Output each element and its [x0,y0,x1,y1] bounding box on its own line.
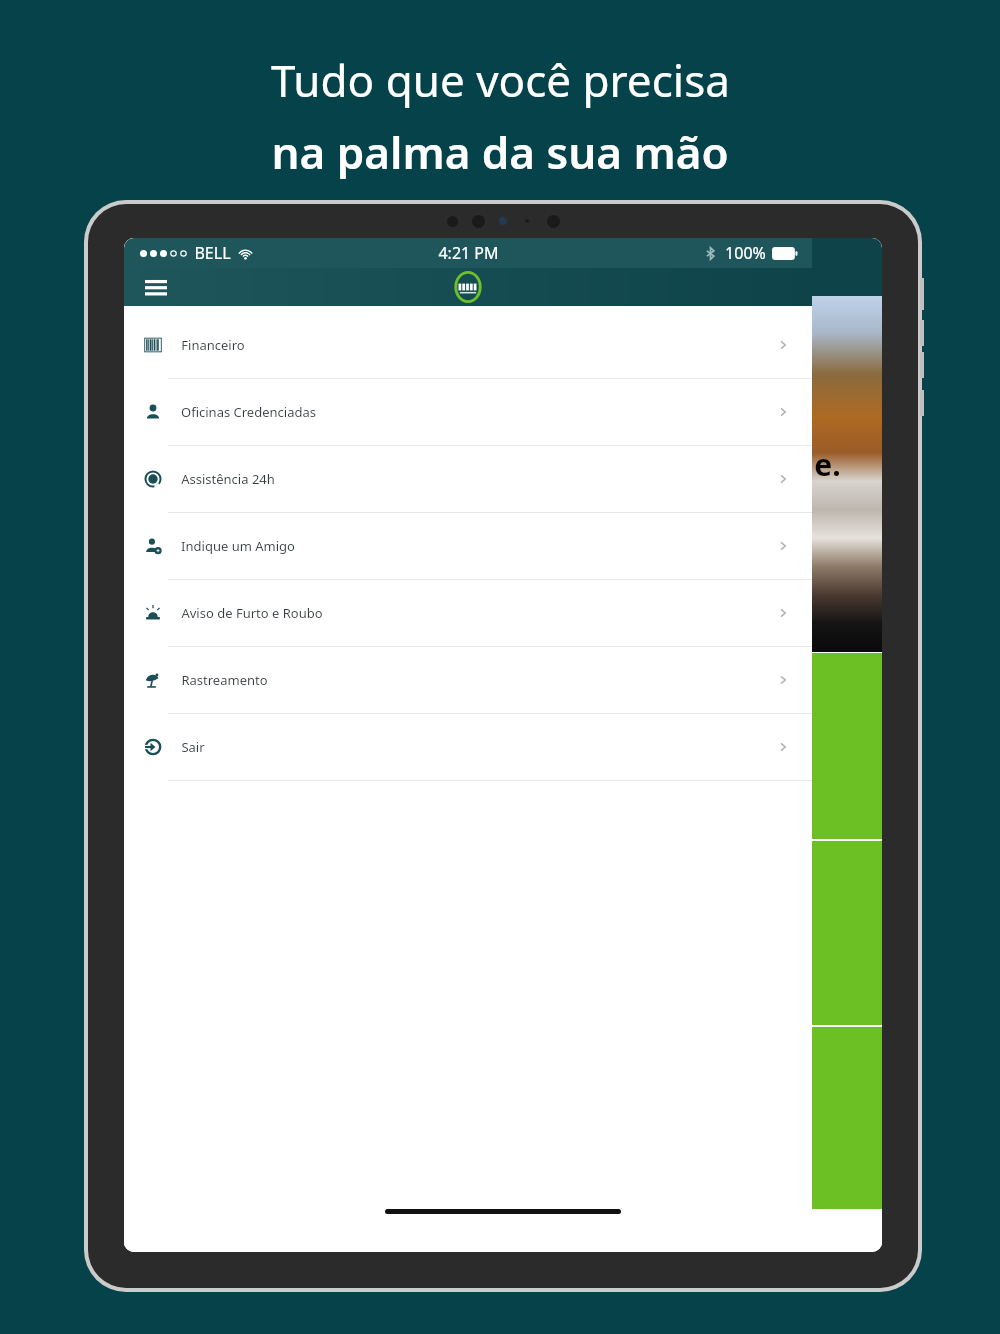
staticText: Sair [181,738,205,756]
button[interactable]: Menu [134,268,178,306]
button[interactable]: Oficinas Credenciadas [124,379,812,446]
staticText: 4:21 PM [438,242,499,264]
staticText: na palma da sua mão [271,122,729,182]
staticText: Financeiro [181,336,245,354]
staticText: BELL [194,242,231,264]
button[interactable]: Financeiro [124,312,812,379]
staticText: Oficinas Credenciadas [181,403,316,421]
button[interactable]: Indique um Amigo [124,513,812,580]
staticText: Indique um Amigo [181,537,295,555]
button[interactable]: Rastreamento [124,647,812,714]
staticText: 100% [725,242,766,264]
staticText: e. [814,444,841,485]
staticText: Rastreamento [181,671,268,689]
staticText: Tudo que você precisa [271,50,730,110]
button[interactable]: Assistência 24h [124,446,812,513]
staticText: Assistência 24h [181,470,275,488]
staticText: Aviso de Furto e Roubo [181,604,323,622]
button[interactable]: Aviso de Furto e Roubo [124,580,812,647]
button[interactable]: Sair [124,714,812,781]
